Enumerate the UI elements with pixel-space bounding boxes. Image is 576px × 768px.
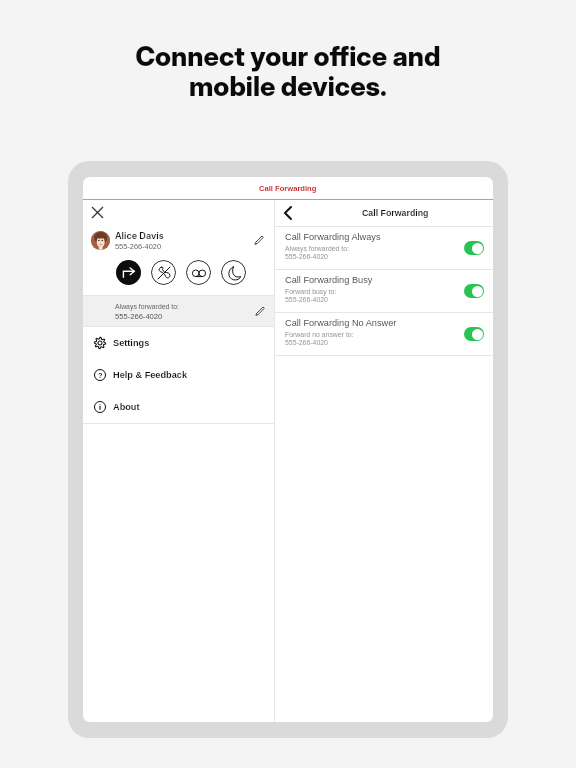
button[interactable]: Edit: [255, 306, 265, 316]
button[interactable]: Settings: [83, 327, 274, 359]
button[interactable]: About: [83, 391, 274, 423]
button[interactable]: Close: [85, 200, 110, 225]
staticText: Always forwarded to:: [115, 303, 179, 311]
staticText: Settings: [113, 338, 150, 348]
staticText: Call Forwarding: [362, 208, 429, 218]
button[interactable]: Back: [277, 203, 297, 223]
button[interactable]: Alice Davis: [91, 229, 261, 251]
button[interactable]: ?: [83, 359, 274, 391]
button[interactable]: Night mode: [221, 260, 246, 285]
staticText: 555-266-4020: [115, 312, 163, 320]
button[interactable]: Call Forwarding Busy: [275, 270, 493, 312]
button[interactable]: Toggle: [464, 327, 484, 341]
staticText: Call Forwarding: [259, 184, 317, 192]
staticText: Alice Davis: [115, 230, 164, 241]
button[interactable]: Voicemail: [186, 260, 211, 285]
staticText: Forward busy to:: [285, 288, 337, 296]
staticText: About: [113, 402, 140, 412]
button[interactable]: Call forwarding: [116, 260, 141, 285]
staticText: 555-266-4020: [115, 242, 162, 250]
staticText: Call Forwarding No Answer: [285, 318, 397, 328]
button[interactable]: Call Forwarding Always: [275, 227, 493, 269]
staticText: Call Forwarding Busy: [285, 275, 373, 285]
staticText: 555-266-4020: [285, 339, 328, 347]
staticText: ?: [98, 371, 103, 379]
button[interactable]: Toggle: [464, 284, 484, 298]
button[interactable]: Call Forwarding No Answer: [275, 313, 493, 355]
staticText: 555-266-4020: [285, 253, 328, 261]
button[interactable]: Edit: [254, 235, 264, 245]
staticText: 555-266-4020: [285, 296, 328, 304]
staticText: Call Forwarding Always: [285, 232, 381, 242]
staticText: Help & Feedback: [113, 370, 188, 380]
staticText: Forward no answer to:: [285, 331, 354, 339]
button[interactable]: Do not disturb: [151, 260, 176, 285]
staticText: Connect your office and mobile devices.: [135, 40, 441, 103]
staticText: Always forwarded to:: [285, 245, 349, 253]
button[interactable]: Toggle: [464, 241, 484, 255]
button[interactable]: Always forwarded to:: [83, 296, 274, 326]
